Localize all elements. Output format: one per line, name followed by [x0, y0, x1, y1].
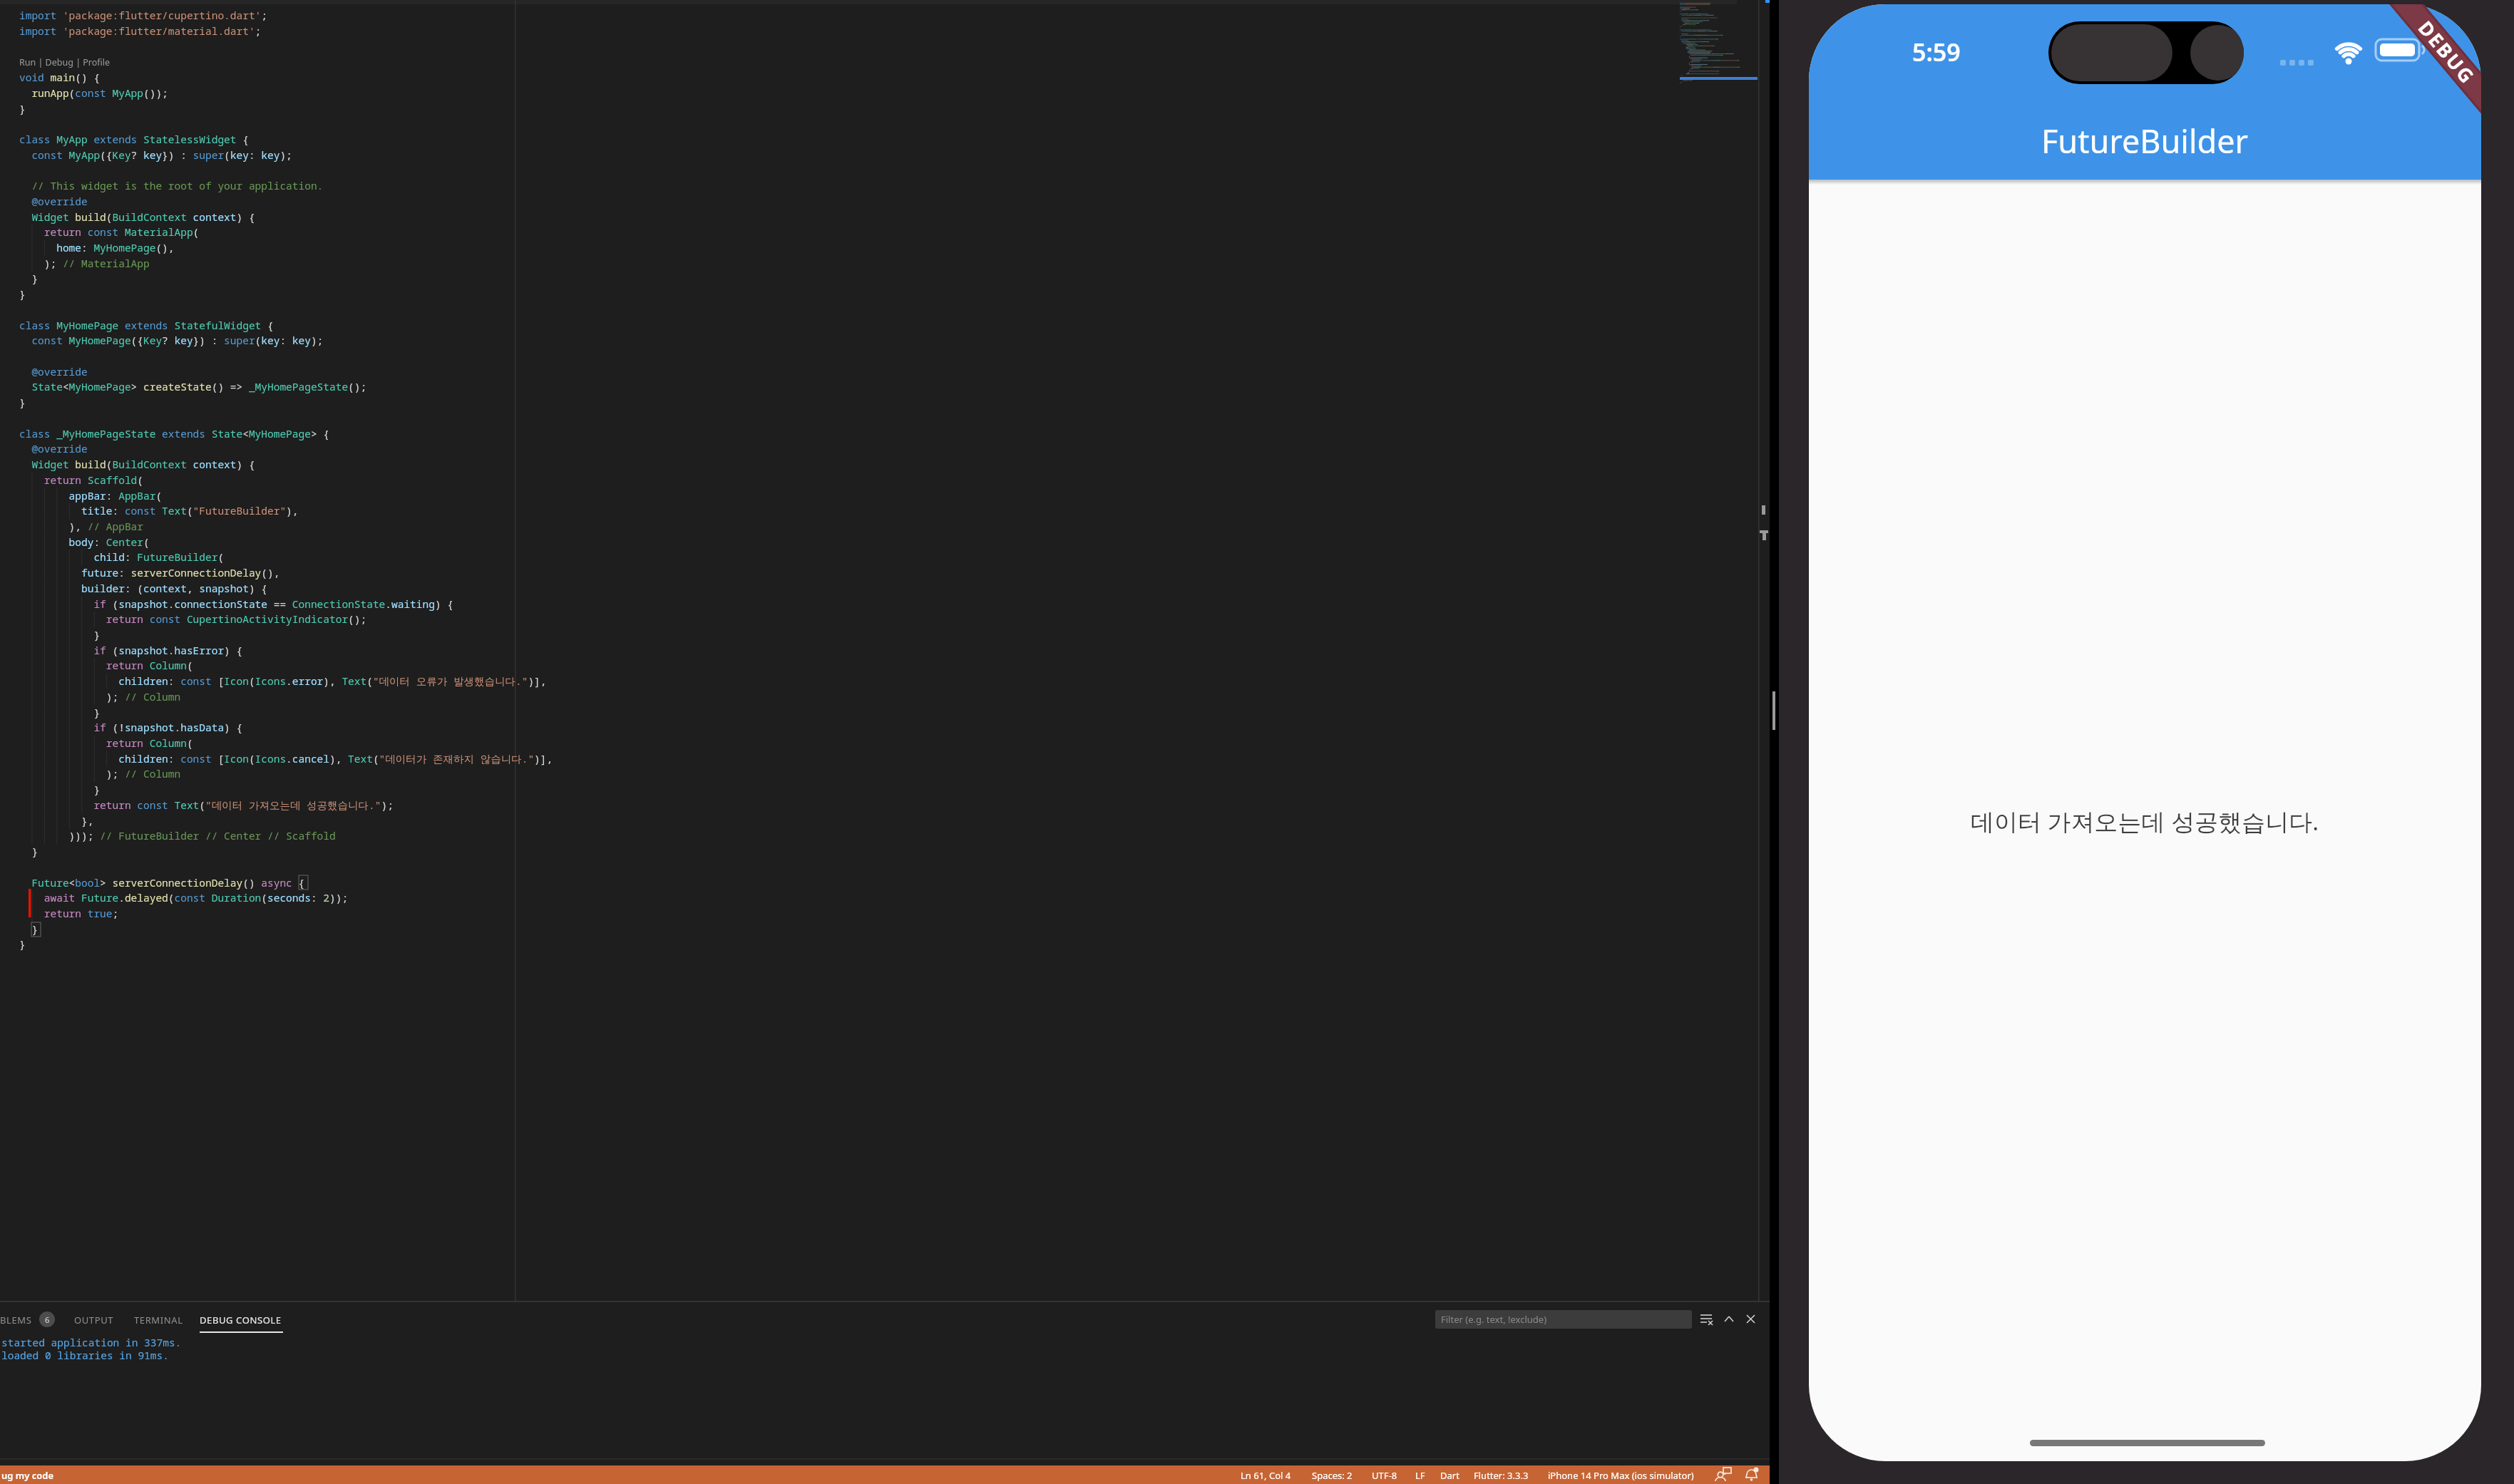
button[interactable]: OUTPUT: [74, 1314, 114, 1326]
staticText: home: MyHomePage(),: [19, 240, 175, 254]
staticText: ), // AppBar: [19, 519, 143, 533]
staticText: }: [19, 287, 26, 301]
staticText: const MyHomePage({Key? key}) : super(key…: [19, 333, 324, 347]
staticText: const MyApp({Key? key}) : super(key: key…: [19, 148, 292, 162]
button[interactable]: Spaces: 2: [1312, 1469, 1353, 1482]
staticText: loaded 0 libraries in 91ms.: [1, 1348, 169, 1362]
staticText: }: [19, 271, 39, 285]
staticText: return Column(: [19, 658, 193, 672]
staticText: return Column(: [19, 736, 193, 750]
staticText: return const MaterialApp(: [19, 225, 200, 239]
staticText: runApp(const MyApp());: [19, 86, 168, 100]
staticText: }: [19, 782, 101, 796]
button[interactable]: TERMINAL: [134, 1314, 183, 1326]
staticText: return Scaffold(: [19, 473, 143, 487]
staticText: class MyApp extends StatelessWidget {: [19, 132, 249, 146]
button[interactable]: UTF-8: [1372, 1469, 1397, 1482]
button[interactable]: iPhone 14 Pro Max (ios simulator): [1548, 1469, 1694, 1482]
staticText: ); // MaterialApp: [19, 256, 150, 270]
staticText: }: [19, 922, 39, 936]
staticText: @override: [19, 441, 88, 455]
staticText: Widget build(BuildContext context) {: [19, 457, 255, 471]
staticText: body: Center(: [19, 535, 150, 549]
staticText: },: [19, 813, 94, 828]
button[interactable]: ug my code: [1, 1469, 54, 1482]
staticText: class MyHomePage extends StatefulWidget …: [19, 318, 274, 332]
staticText: }: [19, 937, 26, 951]
staticText: 5:59: [1912, 36, 1961, 64]
staticText: if (!snapshot.hasData) {: [19, 720, 243, 734]
button[interactable]: Flutter: 3.3.3: [1474, 1469, 1529, 1482]
staticText: @override: [19, 194, 88, 208]
button[interactable]: BLEMS: [0, 1314, 32, 1326]
staticText: ); // Column: [19, 689, 181, 704]
staticText: // This widget is the root of your appli…: [19, 178, 324, 192]
staticText: ); // Column: [19, 766, 181, 780]
button[interactable]: Filter (e.g. text, !exclude): [1435, 1310, 1692, 1329]
staticText: return const CupertinoActivityIndicator(…: [19, 612, 367, 626]
staticText: children: const [Icon(Icons.error), Text…: [19, 674, 547, 688]
staticText: }: [19, 705, 101, 719]
staticText: title: const Text("FutureBuilder"),: [19, 503, 299, 517]
staticText: 6: [45, 1314, 50, 1325]
staticText: State<MyHomePage> createState() => _MyHo…: [19, 379, 367, 393]
staticText: future: serverConnectionDelay(),: [19, 565, 280, 579]
staticText: Widget build(BuildContext context) {: [19, 210, 255, 224]
staticText: }: [19, 627, 101, 641]
staticText: class _MyHomePageState extends State<MyH…: [19, 426, 329, 440]
staticText: void main() {: [19, 70, 101, 84]
staticText: builder: (context, snapshot) {: [19, 581, 267, 595]
button[interactable]: [0, 1465, 1770, 1484]
staticText: import 'package:flutter/material.dart';: [19, 24, 262, 38]
staticText: children: const [Icon(Icons.cancel), Tex…: [19, 751, 553, 766]
button[interactable]: Ln 61, Col 4: [1241, 1469, 1291, 1482]
staticText: Future<bool> serverConnectionDelay() asy…: [19, 875, 305, 890]
button[interactable]: [1809, 4, 2481, 180]
staticText: appBar: AppBar(: [19, 488, 163, 503]
staticText: 데이터 가져오는데 성공했습니다.: [1971, 805, 2319, 838]
staticText: return true;: [19, 906, 119, 920]
staticText: Filter (e.g. text, !exclude): [1441, 1313, 1547, 1326]
button[interactable]: Dart: [1440, 1469, 1459, 1482]
staticText: if (snapshot.connectionState == Connecti…: [19, 597, 453, 611]
staticText: if (snapshot.hasError) {: [19, 643, 243, 657]
staticText: Run | Debug | Profile: [19, 56, 111, 68]
staticText: @override: [19, 364, 88, 378]
staticText: DEBUG: [2413, 15, 2481, 90]
button[interactable]: LF: [1415, 1469, 1425, 1482]
button[interactable]: DEBUG CONSOLE: [200, 1314, 282, 1326]
staticText: ))); // FutureBuilder // Center // Scaff…: [19, 828, 336, 843]
staticText: }: [19, 395, 26, 409]
staticText: child: FutureBuilder(: [19, 550, 225, 564]
staticText: started application in 337ms.: [1, 1335, 182, 1349]
staticText: await Future.delayed(const Duration(seco…: [19, 890, 349, 905]
staticText: return const Text("데이터 가져오는데 성공했습니다.");: [19, 798, 394, 812]
staticText: }: [19, 844, 39, 858]
staticText: FutureBuilder: [2041, 119, 2249, 163]
staticText: import 'package:flutter/cupertino.dart';: [19, 8, 267, 22]
staticText: }: [19, 101, 26, 115]
